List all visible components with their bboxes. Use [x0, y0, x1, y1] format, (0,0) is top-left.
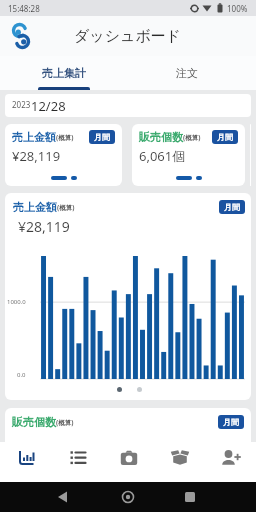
staticText: (概算) — [183, 133, 201, 142]
staticText: 売上金額 — [13, 200, 57, 214]
staticText: ¥28,119 — [18, 217, 70, 236]
staticText: 1000.0 — [7, 298, 26, 306]
button[interactable]: 売上金額 — [5, 124, 122, 186]
staticText: 月間 — [94, 132, 110, 142]
button[interactable] — [52, 442, 103, 482]
staticText: 2023 — [12, 99, 31, 110]
staticText: 月間 — [224, 202, 240, 212]
button[interactable]: 2023 — [5, 94, 251, 117]
staticText: 0.0 — [17, 371, 26, 379]
staticText: (概算) — [57, 203, 75, 212]
button[interactable]: 売上集計 — [0, 56, 128, 90]
button[interactable]: 販売個数 — [5, 408, 251, 442]
staticText: (概算) — [56, 418, 74, 427]
staticText: 販売個数 — [139, 130, 183, 144]
staticText: 12/28 — [31, 97, 66, 115]
button[interactable] — [103, 442, 154, 482]
staticText: 売上集計 — [42, 66, 86, 80]
staticText: 販売個数 — [12, 415, 56, 429]
button[interactable]: 売上金額 — [5, 193, 251, 400]
button[interactable] — [154, 442, 205, 482]
staticText: 注文 — [176, 66, 198, 80]
button[interactable]: 販売個数 — [132, 124, 245, 186]
staticText: 15:48:28 — [8, 3, 40, 14]
staticText: 100% — [227, 3, 248, 14]
staticText: 月間 — [217, 132, 233, 142]
button[interactable] — [205, 442, 256, 482]
staticText: (概算) — [56, 133, 74, 142]
button[interactable]: 注文 — [128, 56, 256, 90]
staticText: 月間 — [223, 417, 239, 427]
button[interactable] — [0, 442, 52, 482]
staticText: ダッシュボード — [74, 27, 182, 46]
staticText: 売上金額 — [12, 130, 56, 144]
staticText: 6,061個 — [139, 147, 186, 165]
staticText: ¥28,119 — [12, 147, 61, 165]
